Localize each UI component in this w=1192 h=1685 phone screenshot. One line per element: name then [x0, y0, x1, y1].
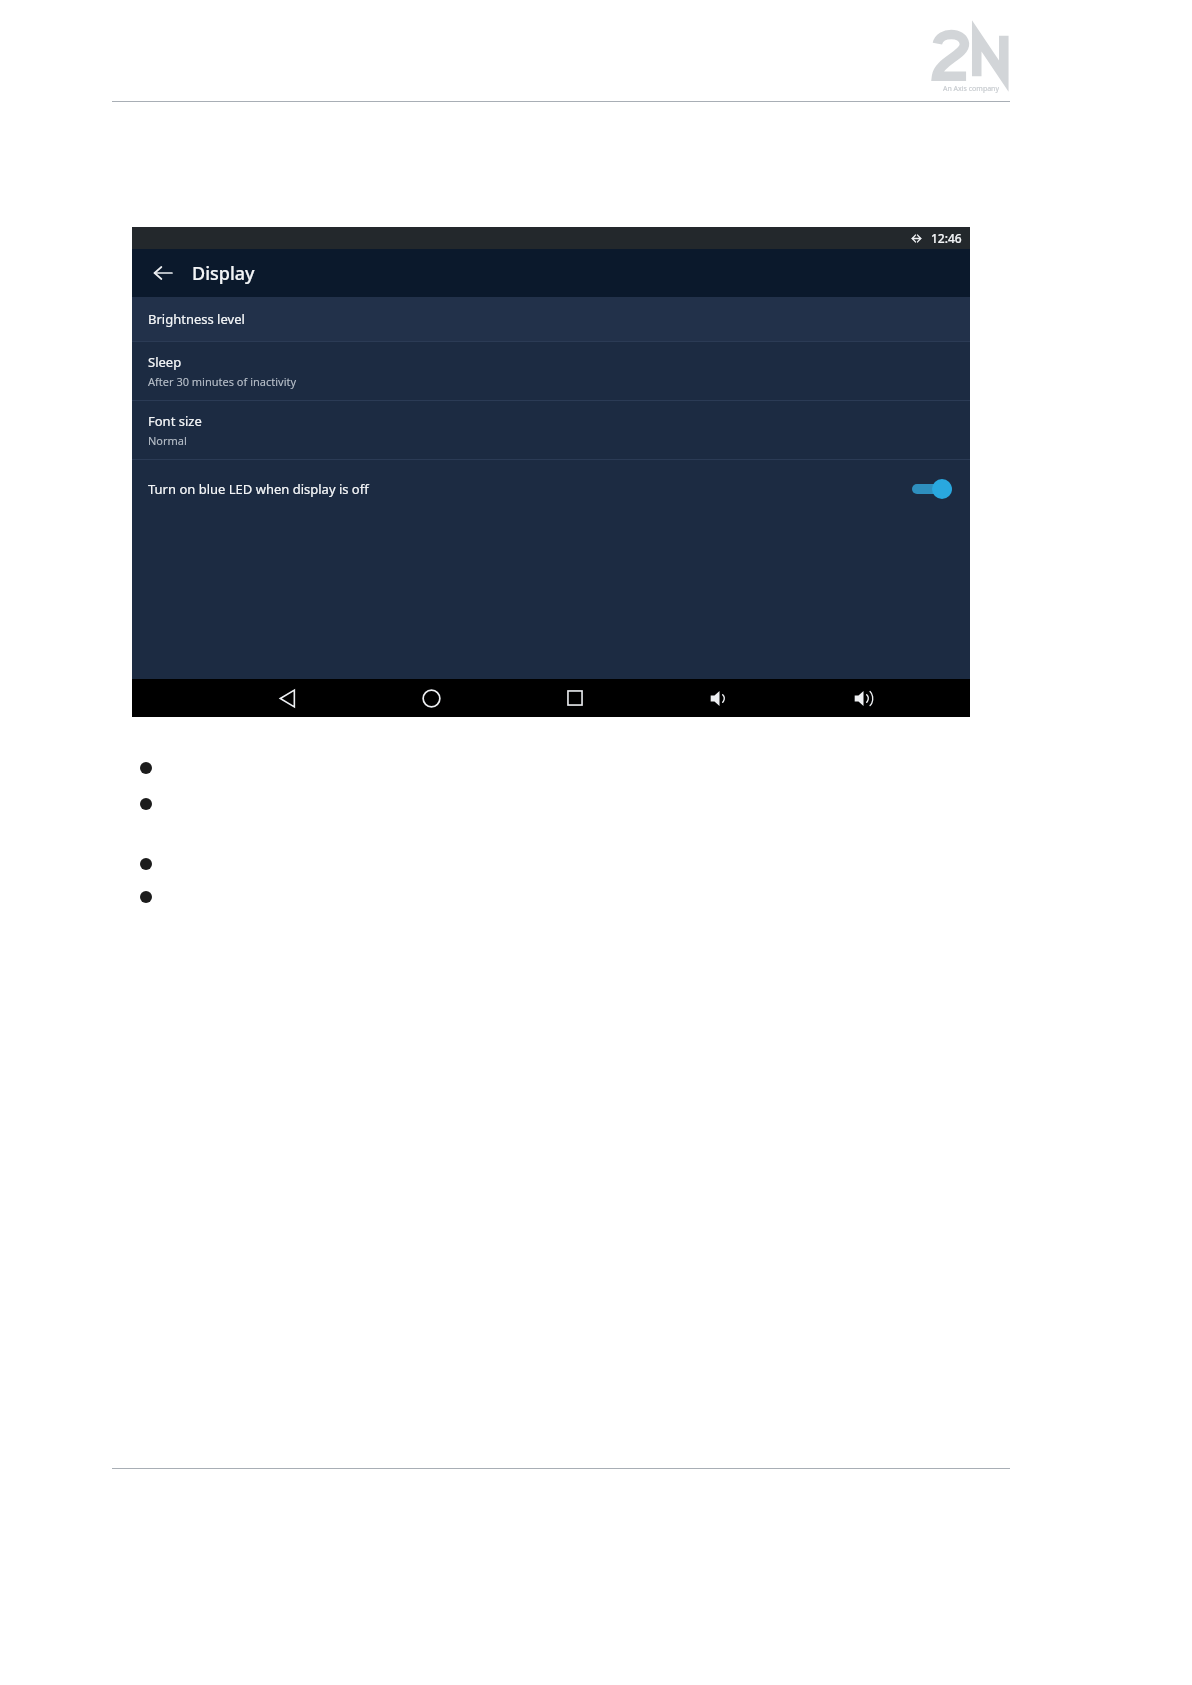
button[interactable]: Volume down: [691, 679, 747, 717]
button[interactable]: Blue LED toggle, on: [912, 478, 952, 500]
button[interactable]: Home: [403, 679, 459, 717]
staticText: Display: [192, 261, 255, 286]
button[interactable]: Volume up: [835, 679, 891, 717]
staticText: Brightness level: [148, 310, 245, 328]
staticText: Sleep: [148, 353, 182, 371]
button[interactable]: Sleep: [132, 342, 970, 400]
button[interactable]: Recents: [547, 679, 603, 717]
button[interactable]: Back: [259, 679, 315, 717]
button[interactable]: Font size: [132, 401, 970, 459]
button[interactable]: Back: [148, 258, 178, 288]
staticText: Font size: [148, 412, 202, 430]
staticText: Turn on blue LED when display is off: [148, 480, 912, 498]
staticText: Normal: [148, 433, 187, 448]
staticText: An Axis company: [930, 84, 1012, 94]
staticText: After 30 minutes of inactivity: [148, 374, 297, 389]
button[interactable]: Brightness level: [132, 297, 970, 341]
staticText: 12:46: [931, 230, 962, 246]
button[interactable]: Turn on blue LED when display is off: [132, 460, 970, 518]
